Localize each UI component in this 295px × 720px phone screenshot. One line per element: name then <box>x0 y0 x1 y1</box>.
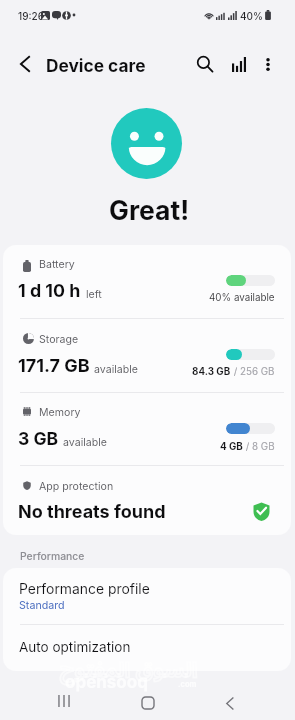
staticText: Auto optimization <box>19 639 131 655</box>
staticText: Performance profile <box>19 581 150 598</box>
button[interactable]: Back <box>204 684 256 720</box>
staticText: 19:26 <box>18 10 44 22</box>
button[interactable] <box>3 465 291 535</box>
staticText: Performance <box>20 550 85 563</box>
staticText: left <box>86 288 102 301</box>
staticText: Memory <box>39 406 81 419</box>
staticText: Storage <box>39 333 79 346</box>
staticText: available <box>94 363 138 376</box>
button[interactable] <box>3 244 291 318</box>
button[interactable] <box>3 623 291 670</box>
button[interactable]: More options <box>251 47 285 81</box>
button[interactable]: Home <box>122 684 174 720</box>
staticText: / 256 GB <box>231 366 275 378</box>
button[interactable]: Recents <box>38 682 90 720</box>
staticText: Battery <box>39 258 75 271</box>
staticText: opensooq <box>65 672 148 693</box>
staticText: No threats found <box>18 501 166 523</box>
button[interactable]: Usage statistics <box>222 47 256 81</box>
staticText: 1 d 10 h <box>18 280 81 302</box>
staticText: Standard <box>19 599 65 612</box>
button[interactable]: Navigate up <box>8 47 42 81</box>
button[interactable] <box>3 319 291 393</box>
staticText: 40% available <box>209 292 275 304</box>
button[interactable] <box>3 568 291 624</box>
staticText: Great! <box>109 194 190 226</box>
staticText: 84.3 GB <box>192 366 231 378</box>
staticText: App protection <box>39 480 114 493</box>
staticText: 4 GB <box>220 441 243 453</box>
button[interactable] <box>3 393 291 467</box>
staticText: available <box>63 436 107 449</box>
staticText: 40% <box>240 10 263 22</box>
button[interactable]: Search <box>188 47 222 81</box>
staticText: 3 GB <box>18 428 59 449</box>
staticText: .com <box>178 680 197 689</box>
staticText: 171.7 GB <box>18 355 90 377</box>
staticText: / 8 GB <box>243 441 275 453</box>
staticText: السوق المفتوح <box>60 648 198 692</box>
staticText: Device care <box>46 55 146 76</box>
